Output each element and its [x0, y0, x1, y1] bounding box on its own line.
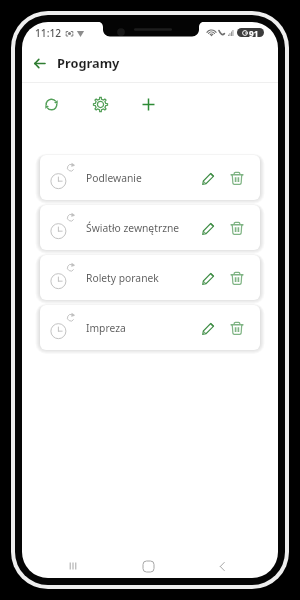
button[interactable]: Edit: [194, 164, 222, 192]
button[interactable]: Edit: [194, 264, 222, 292]
button[interactable]: Back: [25, 49, 53, 77]
staticText: Programy: [57, 54, 120, 71]
staticText: Światło zewnętrzne: [86, 221, 180, 235]
staticText: 91: [249, 28, 259, 37]
button[interactable]: Rolety poranek: [40, 255, 260, 300]
button[interactable]: Impreza: [40, 305, 260, 350]
staticText: Podlewanie: [86, 171, 142, 185]
button[interactable]: Settings: [86, 90, 115, 119]
button[interactable]: Delete: [223, 164, 251, 192]
button[interactable]: Edit: [194, 314, 222, 342]
button[interactable]: Podlewanie: [40, 155, 260, 200]
button[interactable]: Add: [134, 90, 163, 119]
button[interactable]: Delete: [223, 264, 251, 292]
button[interactable]: Back: [209, 554, 235, 578]
button[interactable]: Recents: [60, 554, 86, 578]
button[interactable]: Home: [135, 554, 161, 578]
staticText: Impreza: [86, 321, 126, 335]
button[interactable]: Sync: [37, 90, 66, 119]
button[interactable]: Delete: [223, 214, 251, 242]
staticText: Rolety poranek: [86, 271, 159, 285]
staticText: 11:12: [35, 26, 62, 40]
button[interactable]: Edit: [194, 214, 222, 242]
button[interactable]: Światło zewnętrzne: [40, 205, 260, 250]
button[interactable]: Delete: [223, 314, 251, 342]
